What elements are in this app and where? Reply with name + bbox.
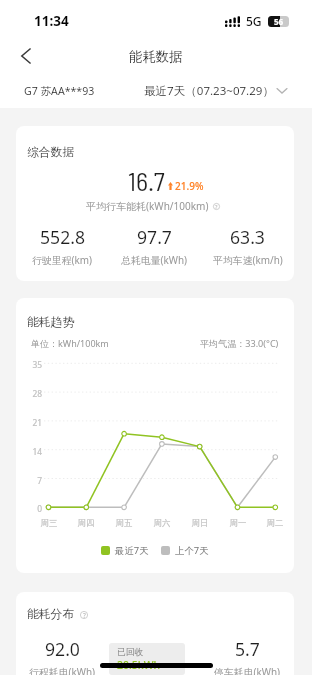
- staticText: 上个7天: [175, 544, 209, 557]
- staticText: 5G: [246, 13, 262, 29]
- staticText: 停车耗电(kWh): [214, 665, 281, 675]
- staticText: 20.5kWh: [117, 658, 161, 672]
- staticText: 平均气温：33.0(°C): [200, 337, 279, 349]
- staticText: 56: [274, 16, 284, 27]
- staticText: 周一: [222, 518, 254, 529]
- staticText: 28: [24, 388, 42, 399]
- staticText: 周四: [70, 518, 102, 529]
- staticText: 能耗分布: [27, 607, 75, 622]
- staticText: 综合数据: [27, 145, 75, 160]
- staticText: 5.7: [235, 637, 260, 661]
- staticText: 14: [24, 446, 42, 457]
- staticText: 97.7: [137, 225, 172, 249]
- staticText: 0: [24, 503, 42, 514]
- staticText: 周六: [146, 518, 178, 529]
- staticText: 平均车速(km/h): [213, 253, 283, 267]
- staticText: 周二: [259, 518, 291, 529]
- staticText: 63.3: [230, 225, 265, 249]
- staticText: G7 苏AA***93: [24, 84, 95, 98]
- button[interactable]: Back: [10, 41, 40, 71]
- staticText: ?: [83, 611, 86, 619]
- staticText: 总耗电量(kWh): [121, 253, 188, 267]
- staticText: 已回收: [117, 647, 144, 658]
- staticText: ?: [215, 203, 218, 210]
- staticText: 7: [24, 475, 42, 486]
- staticText: 552.8: [40, 225, 85, 249]
- staticText: 最近7天: [115, 544, 149, 557]
- staticText: 周五: [108, 518, 140, 529]
- staticText: 行驶里程(km): [32, 253, 93, 267]
- staticText: 周日: [184, 518, 216, 529]
- staticText: 能耗趋势: [27, 315, 75, 330]
- staticText: 21: [24, 417, 42, 428]
- staticText: 单位：kWh/100km: [31, 337, 109, 349]
- staticText: 92.0: [45, 637, 80, 661]
- staticText: 16.7: [128, 165, 165, 196]
- staticText: 21.9%: [175, 179, 204, 193]
- staticText: 最近7天（07.23~07.29）: [144, 83, 274, 99]
- staticText: 平均行车能耗(kWh/100km): [86, 199, 209, 213]
- staticText: 35: [24, 359, 42, 370]
- staticText: 行程耗电(kWh): [29, 665, 96, 675]
- staticText: 周三: [33, 518, 65, 529]
- staticText: 能耗数据: [129, 48, 183, 65]
- staticText: 11:34: [34, 12, 69, 30]
- button[interactable]: 最近7天（07.23~07.29）: [144, 83, 287, 99]
